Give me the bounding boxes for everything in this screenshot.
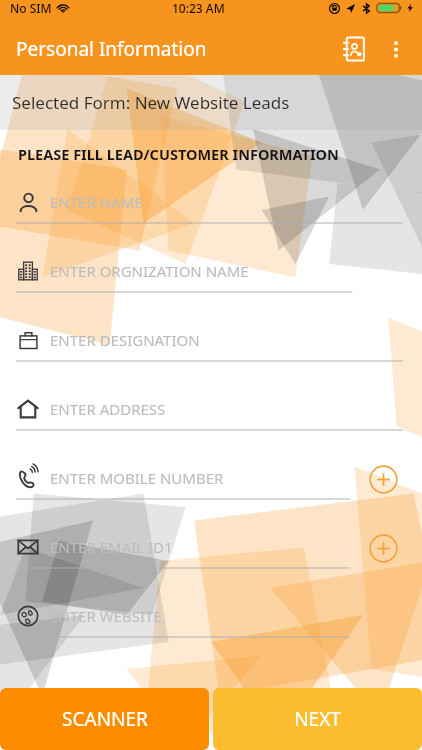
button[interactable]: ENTER ADDRESS bbox=[0, 385, 422, 454]
staticText: No SIM bbox=[10, 0, 52, 16]
staticText: ENTER ADDRESS bbox=[50, 399, 166, 419]
staticText: Personal Information bbox=[16, 36, 207, 62]
button[interactable]: More options bbox=[376, 29, 416, 69]
staticText: ENTER NAME bbox=[50, 192, 143, 212]
button[interactable]: ENTER NAME bbox=[0, 178, 422, 247]
staticText: ENTER WEBSITE bbox=[50, 606, 162, 626]
staticText: ENTER EMAIL ID1 bbox=[50, 537, 173, 557]
button[interactable]: Add ENTER MOBILE NUMBER bbox=[366, 462, 400, 496]
staticText: Selected Form: New Website Leads bbox=[12, 91, 290, 114]
staticText: ENTER MOBILE NUMBER bbox=[50, 468, 224, 488]
button[interactable]: Add contact bbox=[332, 27, 376, 71]
button[interactable]: NEXT bbox=[213, 688, 422, 750]
button[interactable]: ENTER ORGNIZATION NAME bbox=[0, 247, 422, 316]
button[interactable]: ENTER MOBILE NUMBER bbox=[0, 454, 422, 523]
staticText: ENTER ORGNIZATION NAME bbox=[50, 261, 249, 281]
button[interactable]: ENTER EMAIL ID1 bbox=[0, 523, 422, 592]
staticText: SCANNER bbox=[62, 706, 148, 732]
button[interactable]: ENTER WEBSITE bbox=[0, 592, 422, 661]
button[interactable]: Selected Form: New Website Leads bbox=[0, 75, 422, 130]
staticText: NEXT bbox=[294, 706, 341, 732]
button[interactable]: ENTER DESIGNATION bbox=[0, 316, 422, 385]
staticText: ENTER DESIGNATION bbox=[50, 330, 200, 350]
staticText: 10:23 AM bbox=[172, 0, 225, 16]
button[interactable]: Add ENTER EMAIL ID1 bbox=[366, 531, 400, 565]
staticText: PLEASE FILL LEAD/CUSTOMER INFORMATION bbox=[18, 144, 339, 164]
button[interactable]: SCANNER bbox=[0, 688, 209, 750]
